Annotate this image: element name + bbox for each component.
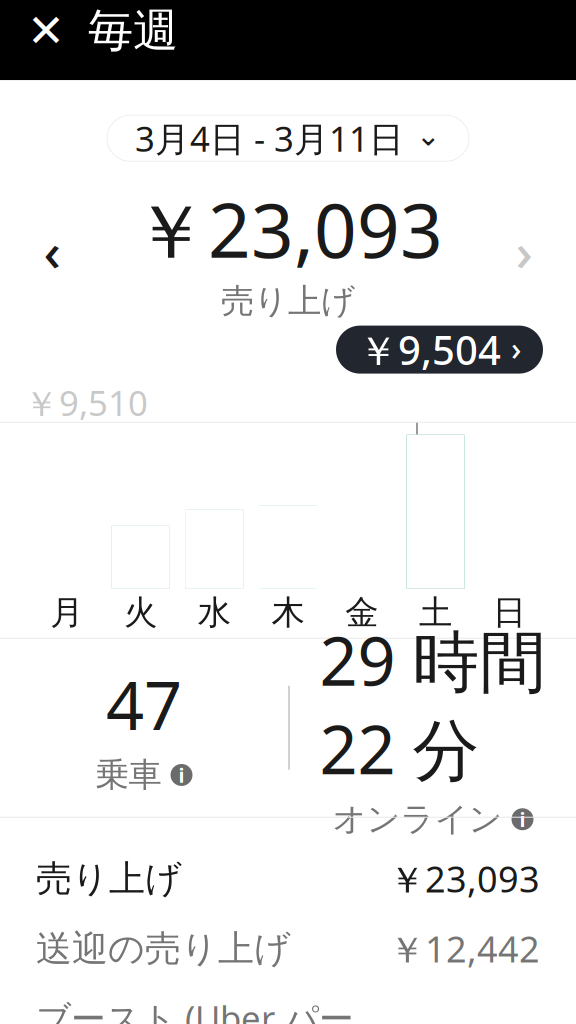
- staticText: ‹: [43, 215, 60, 286]
- staticText: ›: [515, 215, 532, 286]
- button[interactable]: ￥9,504: [336, 326, 543, 374]
- staticText: i: [178, 762, 184, 788]
- staticText: ￥9,510: [24, 380, 148, 426]
- staticText: ⌄: [416, 119, 441, 152]
- staticText: ￥12,442: [389, 925, 540, 973]
- staticText: 47: [106, 660, 182, 748]
- button[interactable]: ブースト (Uber パートナー プロモーシ…: [0, 973, 576, 1024]
- staticText: ✕: [27, 5, 65, 56]
- staticText: 火: [124, 592, 157, 633]
- button[interactable]: More info: [511, 806, 533, 833]
- staticText: 木: [271, 592, 304, 633]
- button[interactable]: 売り上げ: [0, 818, 576, 903]
- staticText: 日: [493, 592, 526, 633]
- staticText: 送迎の売り上げ: [36, 927, 291, 971]
- staticText: 月: [50, 592, 83, 633]
- staticText: 乗車: [95, 754, 161, 795]
- staticText: 売り上げ: [221, 281, 355, 322]
- staticText: ￥23,093: [133, 179, 443, 279]
- staticText: ブースト (Uber パートナー プロモーシ…: [36, 995, 354, 1024]
- button[interactable]: 送迎の売り上げ: [0, 903, 576, 973]
- staticText: オンライン: [332, 799, 502, 840]
- button[interactable]: 3月4日 - 3月11日: [107, 115, 469, 161]
- button[interactable]: Close: [18, 3, 74, 59]
- staticText: ›: [511, 327, 521, 369]
- staticText: ￥9,504: [358, 323, 501, 376]
- staticText: 3月4日 - 3月11日: [135, 115, 404, 161]
- staticText: 売り上げ: [36, 857, 182, 901]
- staticText: 水: [198, 592, 231, 633]
- button[interactable]: More info: [170, 762, 192, 788]
- staticText: 土: [419, 592, 452, 633]
- staticText: 毎週: [88, 3, 178, 59]
- button[interactable]: Next week: [494, 220, 554, 280]
- staticText: ￥23,093: [389, 855, 540, 903]
- staticText: i: [519, 806, 525, 833]
- staticText: 29 時間 22 分: [319, 616, 546, 793]
- staticText: 金: [345, 592, 378, 633]
- button[interactable]: Previous week: [22, 220, 82, 280]
